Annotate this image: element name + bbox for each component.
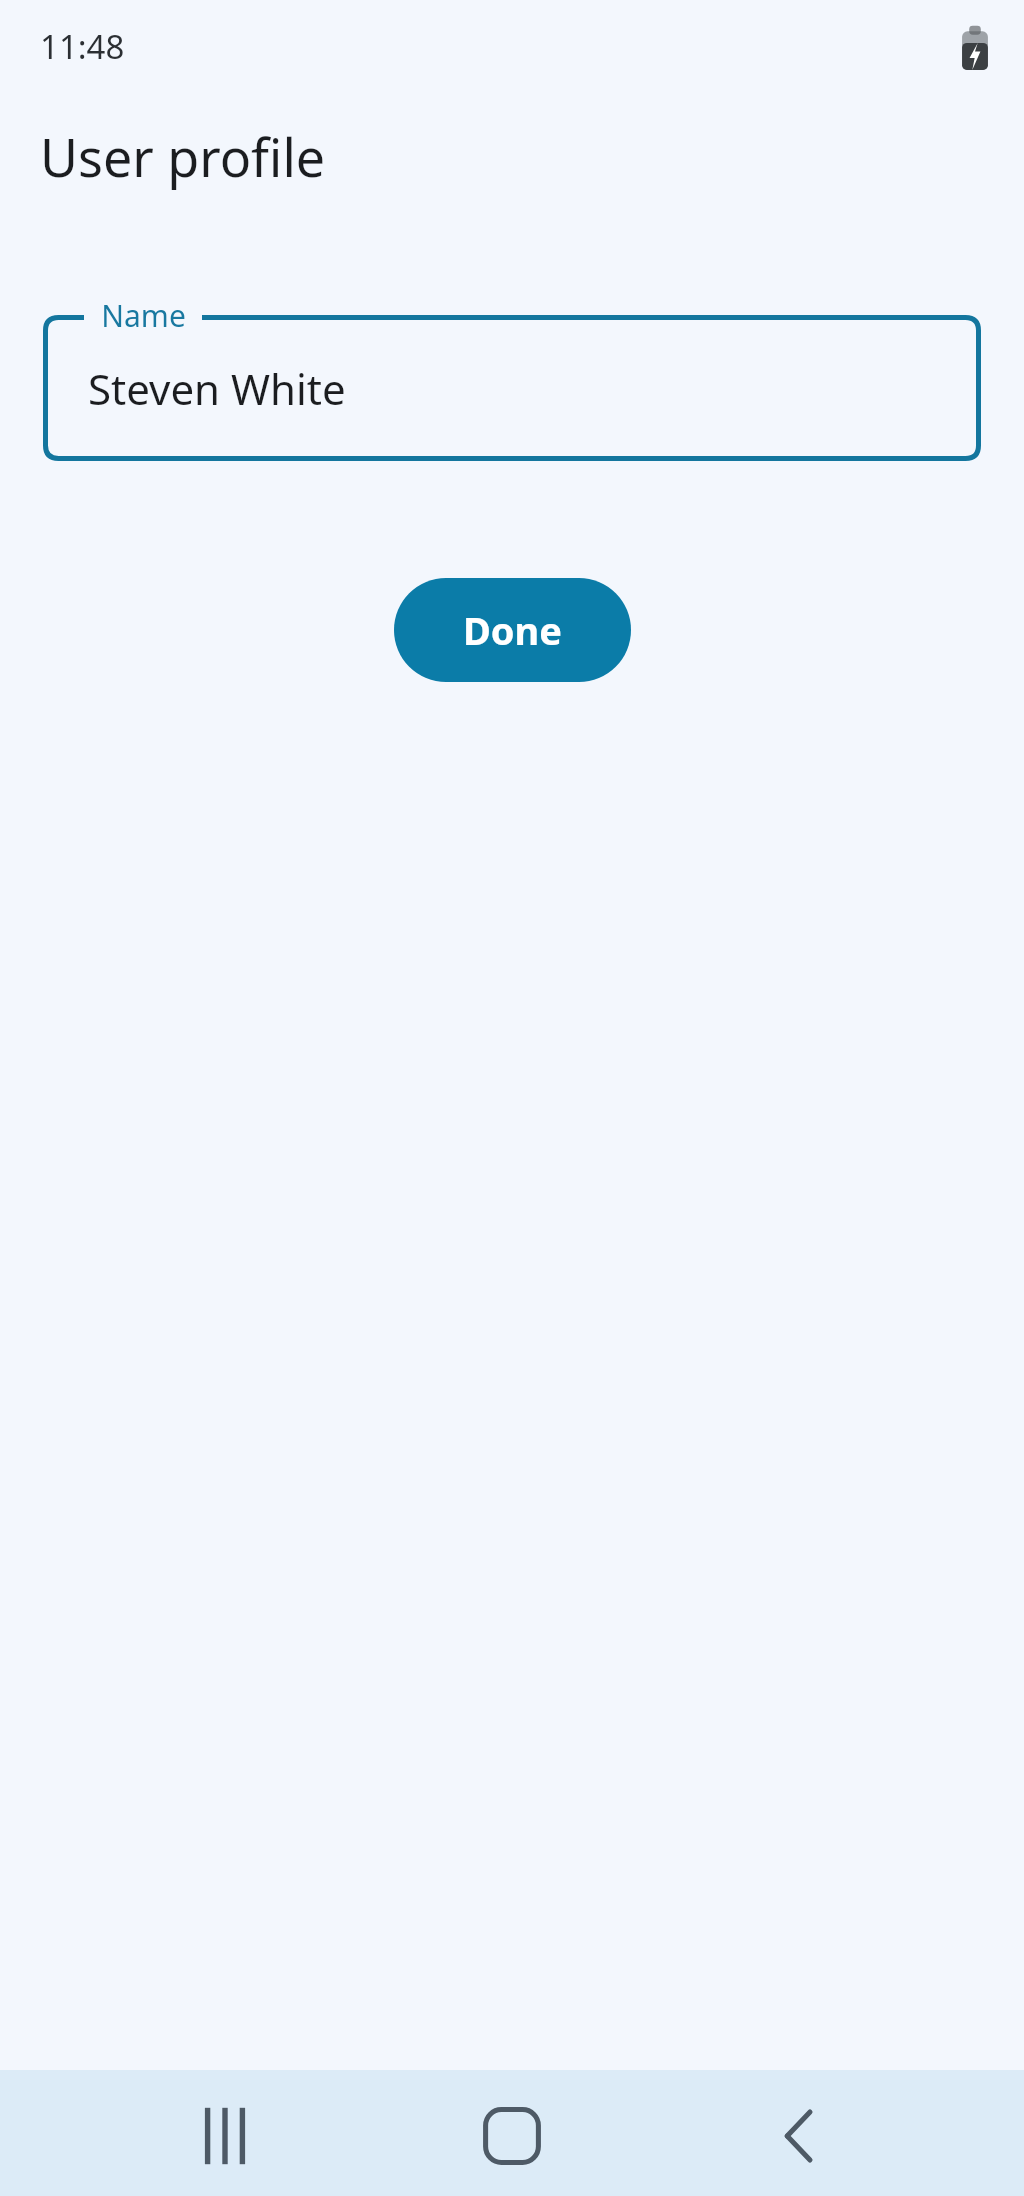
button[interactable]: Steven White (43, 315, 981, 461)
staticText: 11:48 (40, 24, 125, 69)
staticText: Done (463, 604, 562, 656)
button[interactable]: Home (452, 2076, 572, 2196)
staticText: Name (101, 295, 186, 336)
button[interactable]: Recent apps (165, 2076, 285, 2196)
button[interactable]: Back (738, 2076, 858, 2196)
staticText: Steven White (88, 360, 346, 417)
button[interactable]: Done (394, 578, 631, 682)
staticText: User profile (40, 121, 326, 192)
